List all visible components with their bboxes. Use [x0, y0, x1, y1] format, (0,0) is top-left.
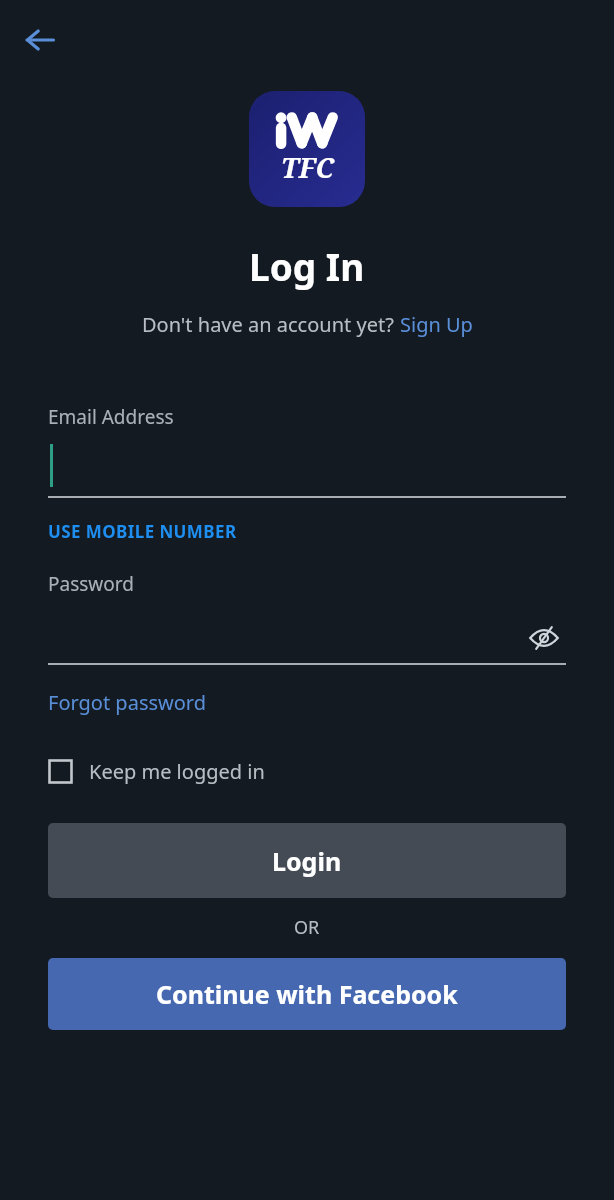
button[interactable]: Forgot password	[48, 689, 207, 716]
button[interactable]: Sign Up	[400, 311, 473, 338]
button[interactable]: Login	[48, 823, 566, 898]
button[interactable]: Back	[12, 12, 68, 68]
button[interactable]: Keep me logged in	[48, 758, 265, 785]
staticText: Continue with Facebook	[156, 977, 458, 1011]
staticText: OR	[294, 915, 320, 940]
button[interactable]: Continue with Facebook	[48, 958, 566, 1030]
button[interactable]	[48, 430, 566, 496]
staticText: Password	[48, 571, 134, 597]
staticText: USE MOBILE NUMBER	[48, 520, 237, 543]
staticText: Don't have an account yet?	[142, 311, 400, 338]
staticText: Keep me logged in	[89, 758, 265, 785]
button[interactable]: USE MOBILE NUMBER	[48, 520, 237, 543]
staticText: Sign Up	[400, 311, 473, 338]
staticText: TFC	[281, 149, 334, 186]
staticText: Email Address	[48, 404, 174, 430]
staticText: Log In	[249, 241, 365, 291]
staticText: Login	[272, 844, 342, 878]
button[interactable]: Show password	[522, 616, 566, 660]
staticText: Forgot password	[48, 689, 207, 716]
